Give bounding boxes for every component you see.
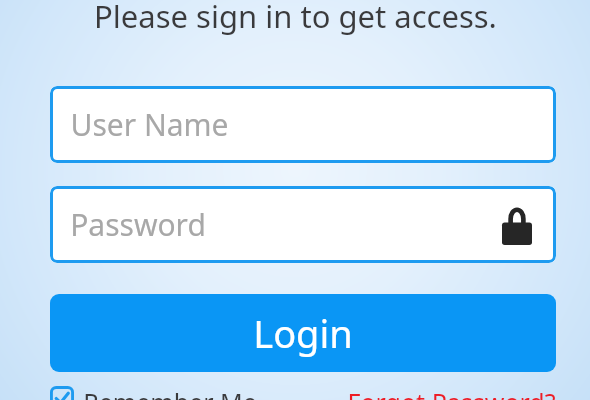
button[interactable]: User Name [50,86,556,163]
staticText: Remember Me [83,385,257,400]
staticText: Forgot Password? [347,385,556,400]
other: Password is secure [502,205,532,245]
button[interactable]: Forgot Password? [347,385,556,400]
staticText: Password [70,204,206,245]
staticText: Please sign in to get access. [94,0,497,37]
button[interactable]: Login [50,294,556,372]
button[interactable]: Remember Me [50,385,257,400]
staticText: User Name [70,104,229,145]
button[interactable]: Password [50,186,556,263]
staticText: Login [253,307,353,359]
